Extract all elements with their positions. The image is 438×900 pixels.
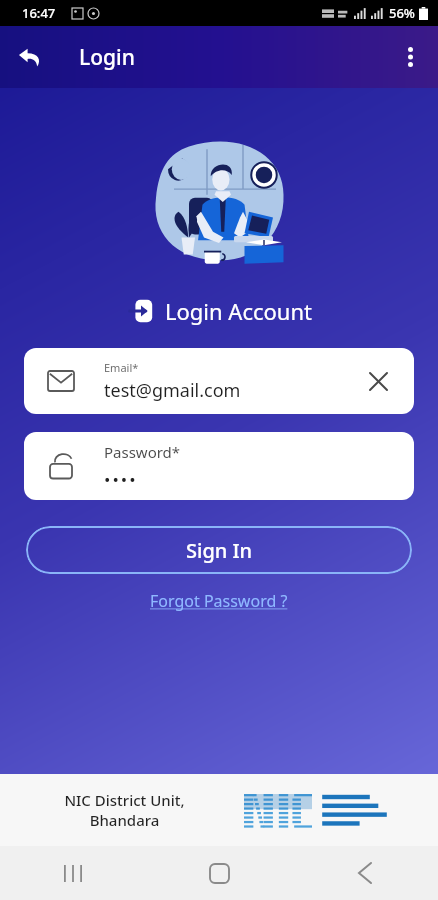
- staticText: Password*: [104, 442, 181, 462]
- staticText: Login: [79, 43, 135, 72]
- button[interactable]: Clear email: [364, 367, 392, 395]
- button[interactable]: Back: [292, 846, 438, 900]
- button[interactable]: Recents: [0, 846, 146, 900]
- button[interactable]: More options: [388, 35, 432, 79]
- button[interactable]: Forgot Password ?: [142, 586, 296, 616]
- button[interactable]: Login Account: [127, 296, 312, 326]
- button[interactable]: Home: [146, 846, 292, 900]
- staticText: NIC District Unit, Bhandara: [30, 790, 219, 830]
- staticText: 56%: [389, 4, 415, 22]
- staticText: Sign In: [186, 537, 253, 564]
- staticText: 16:47: [22, 4, 56, 22]
- button[interactable]: Email*: [24, 348, 414, 414]
- staticText: Email*: [104, 360, 139, 375]
- staticText: Forgot Password ?: [150, 590, 288, 612]
- staticText: Login Account: [165, 296, 312, 326]
- staticText: ••••: [104, 468, 138, 491]
- staticText: test@gmail.com: [104, 378, 241, 403]
- button[interactable]: Sign In: [26, 526, 412, 574]
- button[interactable]: Password*: [24, 432, 414, 500]
- button[interactable]: Back: [8, 35, 52, 79]
